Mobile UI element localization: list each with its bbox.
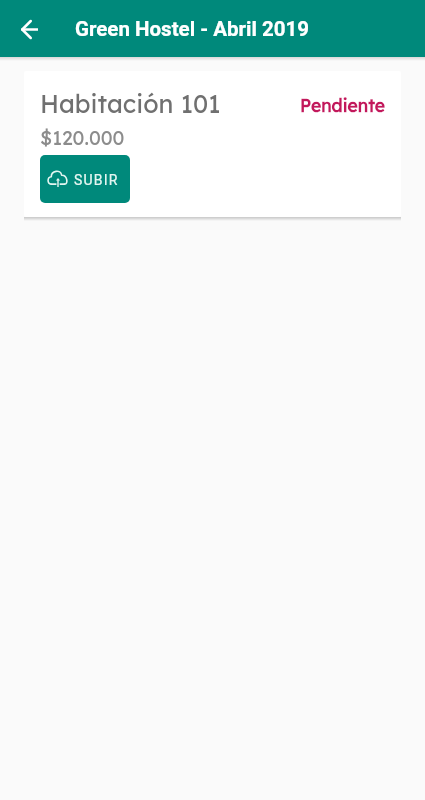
button[interactable]: Back	[5, 5, 53, 53]
button[interactable]: SUBIR	[40, 155, 130, 203]
staticText: SUBIR	[74, 172, 119, 188]
staticText: Green Hostel - Abril 2019	[75, 17, 310, 41]
staticText: $120.000	[40, 125, 125, 149]
staticText: Pendiente	[300, 94, 386, 116]
staticText: Habitación 101	[40, 88, 221, 119]
